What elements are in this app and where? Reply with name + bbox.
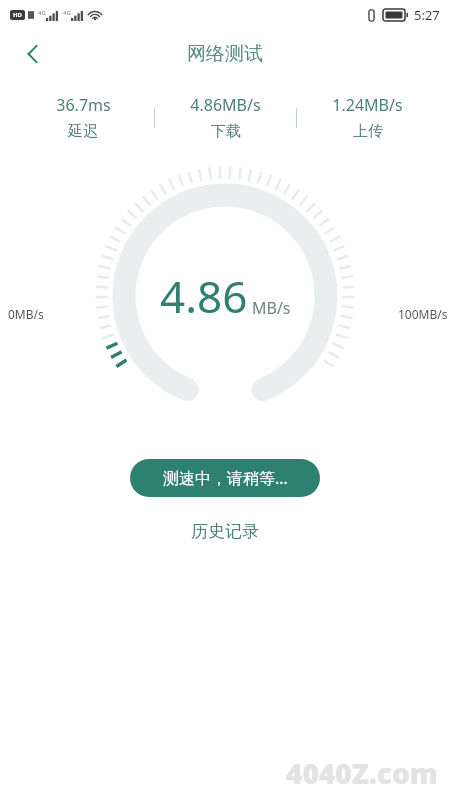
staticText: HD: [13, 11, 22, 19]
staticText: 0MB/s: [8, 306, 44, 322]
staticText: 上传: [353, 122, 383, 141]
staticText: 网络测试: [187, 42, 263, 66]
staticText: 下载: [211, 122, 241, 141]
staticText: 4G: [38, 9, 46, 17]
button[interactable]: 测速中，请稍等…: [130, 459, 320, 497]
staticText: 4G: [63, 9, 71, 17]
staticText: 5:27: [414, 6, 440, 24]
staticText: MB/s: [252, 297, 291, 319]
staticText: 历史记录: [191, 521, 259, 542]
button[interactable]: 历史记录: [171, 515, 279, 548]
button[interactable]: Back: [10, 31, 56, 77]
staticText: 100MB/s: [398, 306, 448, 322]
staticText: 延迟: [68, 122, 98, 141]
staticText: 4.86: [160, 266, 248, 326]
staticText: 4040Z.com: [286, 754, 438, 792]
staticText: 测速中，请稍等…: [163, 467, 288, 489]
staticText: 36.7ms: [56, 94, 111, 116]
staticText: 1.24MB/s: [332, 94, 403, 116]
staticText: 4.86MB/s: [190, 94, 261, 116]
